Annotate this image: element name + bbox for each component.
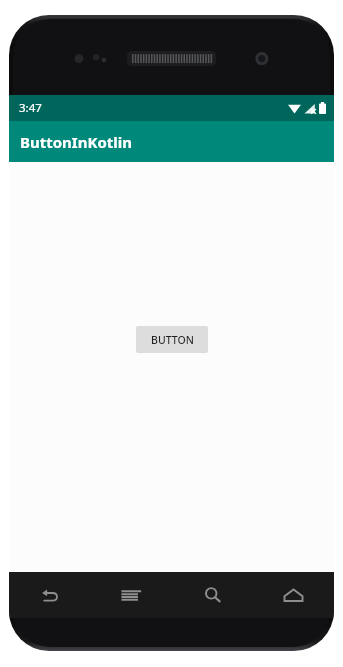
staticText: BUTTON [151,333,194,347]
button[interactable]: Search [172,572,253,618]
staticText: 3:47 [19,100,42,116]
button[interactable]: Back [9,572,91,618]
button[interactable]: BUTTON [136,326,208,353]
staticText: ButtonInKotlin [20,132,133,152]
button[interactable]: Home [253,572,334,618]
button[interactable]: Menu [91,572,172,618]
